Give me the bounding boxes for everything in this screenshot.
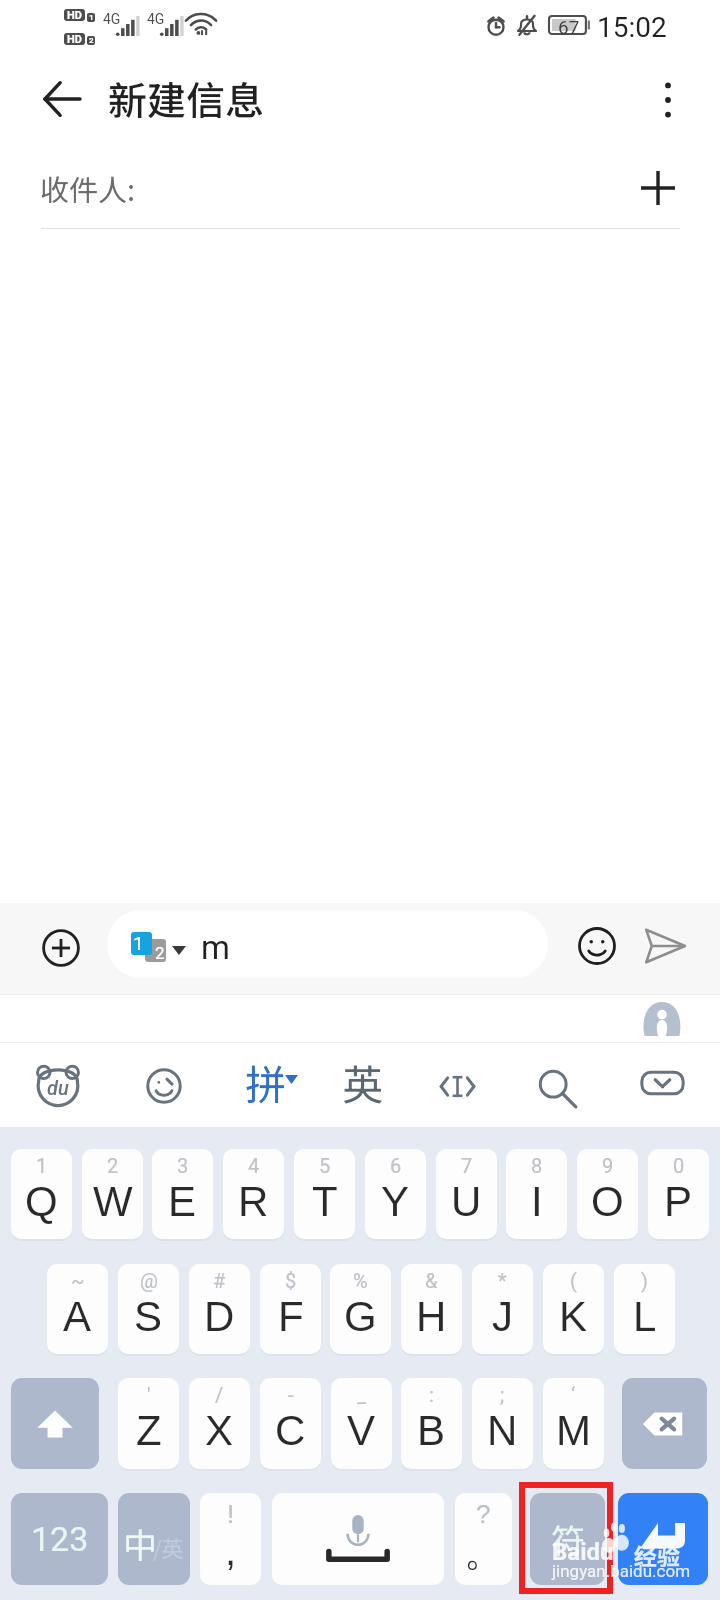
button[interactable]: & <box>401 1264 462 1354</box>
button[interactable]: _ <box>331 1378 392 1469</box>
staticText: J <box>492 1293 513 1340</box>
button[interactable]: ‘ <box>543 1378 604 1469</box>
button[interactable]: 123 <box>11 1493 108 1585</box>
button[interactable]: 3 <box>152 1149 213 1239</box>
button[interactable]: Emoji <box>566 915 628 977</box>
staticText: * <box>498 1269 507 1292</box>
staticText: A <box>63 1293 92 1340</box>
button[interactable]: 拼 <box>232 1043 332 1127</box>
staticText: ‘ <box>571 1383 576 1406</box>
staticText: ' <box>147 1383 151 1406</box>
button[interactable]: ' <box>118 1378 179 1469</box>
staticText: 1 <box>36 1154 48 1177</box>
staticText: - <box>288 1383 294 1406</box>
staticText: Z <box>136 1407 162 1454</box>
staticText: HD <box>67 9 82 21</box>
button[interactable]: 符 <box>530 1493 605 1585</box>
staticText: 3 <box>177 1154 189 1177</box>
button[interactable]: 中 <box>118 1493 190 1585</box>
staticText: 2 <box>107 1154 119 1177</box>
staticText: / <box>215 1383 224 1406</box>
button[interactable]: More options <box>638 70 698 130</box>
staticText: S <box>134 1293 163 1340</box>
button[interactable]: Emoji <box>132 1043 202 1127</box>
staticText: Baidu <box>552 1538 614 1566</box>
button[interactable]: @ <box>118 1264 179 1354</box>
staticText: ( <box>570 1269 577 1292</box>
button[interactable]: Add attachment <box>29 917 93 981</box>
button[interactable]: 5 <box>294 1149 355 1239</box>
staticText: 0 <box>673 1154 685 1177</box>
staticText: jingyan.baidu.com <box>552 1561 691 1581</box>
button[interactable]: * <box>472 1264 533 1354</box>
staticText: $ <box>285 1269 297 1292</box>
staticText: du <box>47 1076 69 1099</box>
staticText: O <box>591 1178 624 1225</box>
staticText: 8 <box>531 1154 543 1177</box>
button[interactable]: Space <box>272 1493 444 1585</box>
staticText: 符 <box>551 1515 585 1564</box>
button[interactable]: 0 <box>648 1149 709 1239</box>
button[interactable]: ! <box>200 1493 261 1585</box>
button[interactable]: Back <box>30 67 94 131</box>
staticText: _ <box>357 1383 367 1406</box>
button[interactable]: - <box>260 1378 321 1469</box>
button[interactable]: # <box>189 1264 250 1354</box>
button[interactable]: Enter <box>618 1493 708 1585</box>
button[interactable]: Baidu input <box>24 1051 91 1118</box>
button[interactable]: 1 <box>11 1149 72 1239</box>
staticText: ! <box>227 1499 235 1528</box>
staticText: T <box>312 1178 338 1225</box>
staticText: 1 <box>89 13 94 22</box>
button[interactable]: 7 <box>436 1149 497 1239</box>
button[interactable]: Send <box>634 915 696 977</box>
staticText: % <box>353 1269 368 1292</box>
button[interactable]: 2 <box>82 1149 143 1239</box>
button[interactable]: % <box>330 1264 391 1354</box>
button[interactable]: $ <box>260 1264 321 1354</box>
staticText: ) <box>641 1269 648 1292</box>
staticText: 拼 <box>245 1052 286 1111</box>
button[interactable]: ; <box>472 1378 533 1469</box>
button[interactable]: / <box>189 1378 250 1469</box>
staticText: 新建信息 <box>108 70 265 126</box>
staticText: F <box>278 1293 304 1340</box>
button[interactable]: 4 <box>223 1149 284 1239</box>
button[interactable]: Search <box>520 1043 590 1127</box>
button[interactable]: ( <box>543 1264 604 1354</box>
staticText: 收件人: <box>40 167 136 209</box>
button[interactable]: : <box>401 1378 462 1469</box>
button[interactable]: 英 <box>320 1043 406 1127</box>
staticText: 2 <box>155 943 165 962</box>
button[interactable]: ) <box>614 1264 675 1354</box>
staticText: ~ <box>71 1269 85 1292</box>
staticText: 15:02 <box>597 11 667 44</box>
staticText: V <box>347 1407 376 1454</box>
button[interactable]: ~ <box>47 1264 108 1354</box>
staticText: L <box>633 1293 657 1340</box>
staticText: W <box>93 1178 133 1225</box>
staticText: 2 <box>89 36 94 45</box>
button[interactable]: Shift <box>11 1378 99 1469</box>
staticText: 。 <box>464 1526 504 1576</box>
staticText: C <box>275 1407 306 1454</box>
button[interactable]: ? <box>455 1493 512 1585</box>
button[interactable]: Hide keyboard <box>625 1043 695 1127</box>
button[interactable]: 6 <box>365 1149 426 1239</box>
button[interactable]: 2 <box>107 910 548 978</box>
staticText: 1 <box>133 932 144 954</box>
staticText: 123 <box>31 1519 89 1559</box>
button[interactable]: 8 <box>506 1149 567 1239</box>
staticText: Y <box>381 1178 410 1225</box>
staticText: 4G <box>103 11 121 27</box>
staticText: 4G <box>147 11 165 27</box>
staticText: N <box>487 1407 518 1454</box>
staticText: 7 <box>461 1154 473 1177</box>
staticText: R <box>238 1178 269 1225</box>
button[interactable]: 9 <box>577 1149 638 1239</box>
staticText: 6 <box>390 1154 402 1177</box>
button[interactable]: Cursor keys <box>420 1043 490 1127</box>
button[interactable]: Backspace <box>622 1378 707 1469</box>
staticText: H <box>416 1293 447 1340</box>
button[interactable]: Add recipient <box>626 156 690 220</box>
